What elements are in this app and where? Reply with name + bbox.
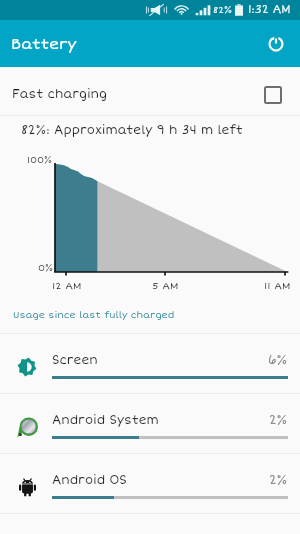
staticText: 2% <box>269 473 288 488</box>
staticText: Usage since last fully charged <box>13 309 175 321</box>
staticText: 2% <box>269 413 288 428</box>
staticText: Screen <box>52 353 98 368</box>
button[interactable]: Android System <box>0 394 300 453</box>
staticText: Android OS <box>52 473 127 488</box>
staticText: 82% <box>213 5 233 16</box>
staticText: 100% <box>27 155 53 166</box>
staticText: 11 AM <box>264 280 291 292</box>
staticText: 82%: Approximately 9 h 34 m left <box>21 123 243 138</box>
button[interactable]: Screen <box>0 334 300 393</box>
button[interactable]: Fast charging <box>0 67 300 115</box>
staticText: Android System <box>52 413 159 428</box>
staticText: Battery <box>11 35 77 53</box>
button[interactable]: Android OS <box>0 454 300 513</box>
staticText: Fast charging <box>12 87 107 102</box>
staticText: 0% <box>38 263 54 274</box>
staticText: 12 AM <box>52 280 82 292</box>
button[interactable]: Refresh <box>256 24 296 64</box>
staticText: 1:32 AM <box>248 3 291 17</box>
staticText: 6% <box>268 353 288 368</box>
staticText: 5 AM <box>152 280 179 292</box>
